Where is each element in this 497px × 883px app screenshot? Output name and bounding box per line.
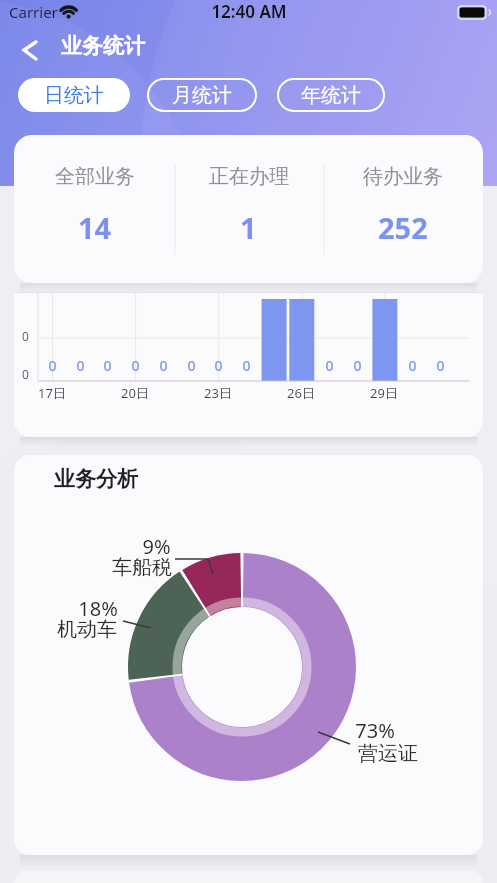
staticText: 0 bbox=[187, 356, 196, 375]
staticText: 年统计 bbox=[301, 83, 361, 108]
staticText: 0 bbox=[48, 356, 57, 375]
staticText: 0 bbox=[242, 356, 251, 375]
staticText: 0 bbox=[103, 356, 112, 375]
staticText: 73% bbox=[355, 717, 395, 744]
staticText: 正在办理 bbox=[209, 164, 289, 189]
staticText: 26日 bbox=[287, 384, 315, 402]
staticText: 0 bbox=[131, 356, 140, 375]
staticText: 0 bbox=[214, 356, 223, 375]
staticText: 1 bbox=[240, 208, 257, 247]
button[interactable]: 正在办理 bbox=[175, 164, 322, 247]
button[interactable] bbox=[14, 34, 44, 64]
button[interactable]: 全部业务 bbox=[14, 164, 175, 247]
staticText: 29日 bbox=[370, 384, 398, 402]
staticText: 机动车 bbox=[57, 617, 117, 642]
staticText: 0 bbox=[325, 356, 334, 375]
staticText: 营运证 bbox=[358, 741, 418, 766]
button[interactable]: 月统计 bbox=[147, 78, 257, 112]
button[interactable]: 日统计 bbox=[18, 78, 130, 112]
staticText: 20日 bbox=[121, 384, 149, 402]
staticText: 18% bbox=[78, 595, 118, 622]
button[interactable]: 年统计 bbox=[277, 78, 385, 112]
staticText: 12:40 AM bbox=[211, 0, 287, 23]
staticText: 0 bbox=[159, 356, 168, 375]
staticText: 252 bbox=[378, 208, 428, 247]
staticText: 14 bbox=[78, 208, 112, 247]
staticText: 全部业务 bbox=[55, 164, 135, 189]
staticText: 待办业务 bbox=[363, 164, 443, 189]
staticText: 0 bbox=[22, 328, 29, 344]
staticText: Carrier bbox=[9, 2, 58, 22]
staticText: 月统计 bbox=[172, 83, 232, 108]
staticText: 业务统计 bbox=[61, 33, 145, 59]
staticText: 业务分析 bbox=[54, 466, 138, 492]
staticText: 日统计 bbox=[44, 83, 104, 108]
staticText: 0 bbox=[76, 356, 85, 375]
staticText: 17日 bbox=[38, 384, 66, 402]
staticText: 0 bbox=[408, 356, 417, 375]
staticText: 0 bbox=[22, 366, 29, 382]
staticText: 9% bbox=[142, 533, 171, 560]
staticText: 车船税 bbox=[112, 555, 172, 580]
staticText: 0 bbox=[436, 356, 445, 375]
staticText: 23日 bbox=[204, 384, 232, 402]
staticText: 0 bbox=[353, 356, 362, 375]
button[interactable]: 待办业务 bbox=[322, 164, 483, 247]
